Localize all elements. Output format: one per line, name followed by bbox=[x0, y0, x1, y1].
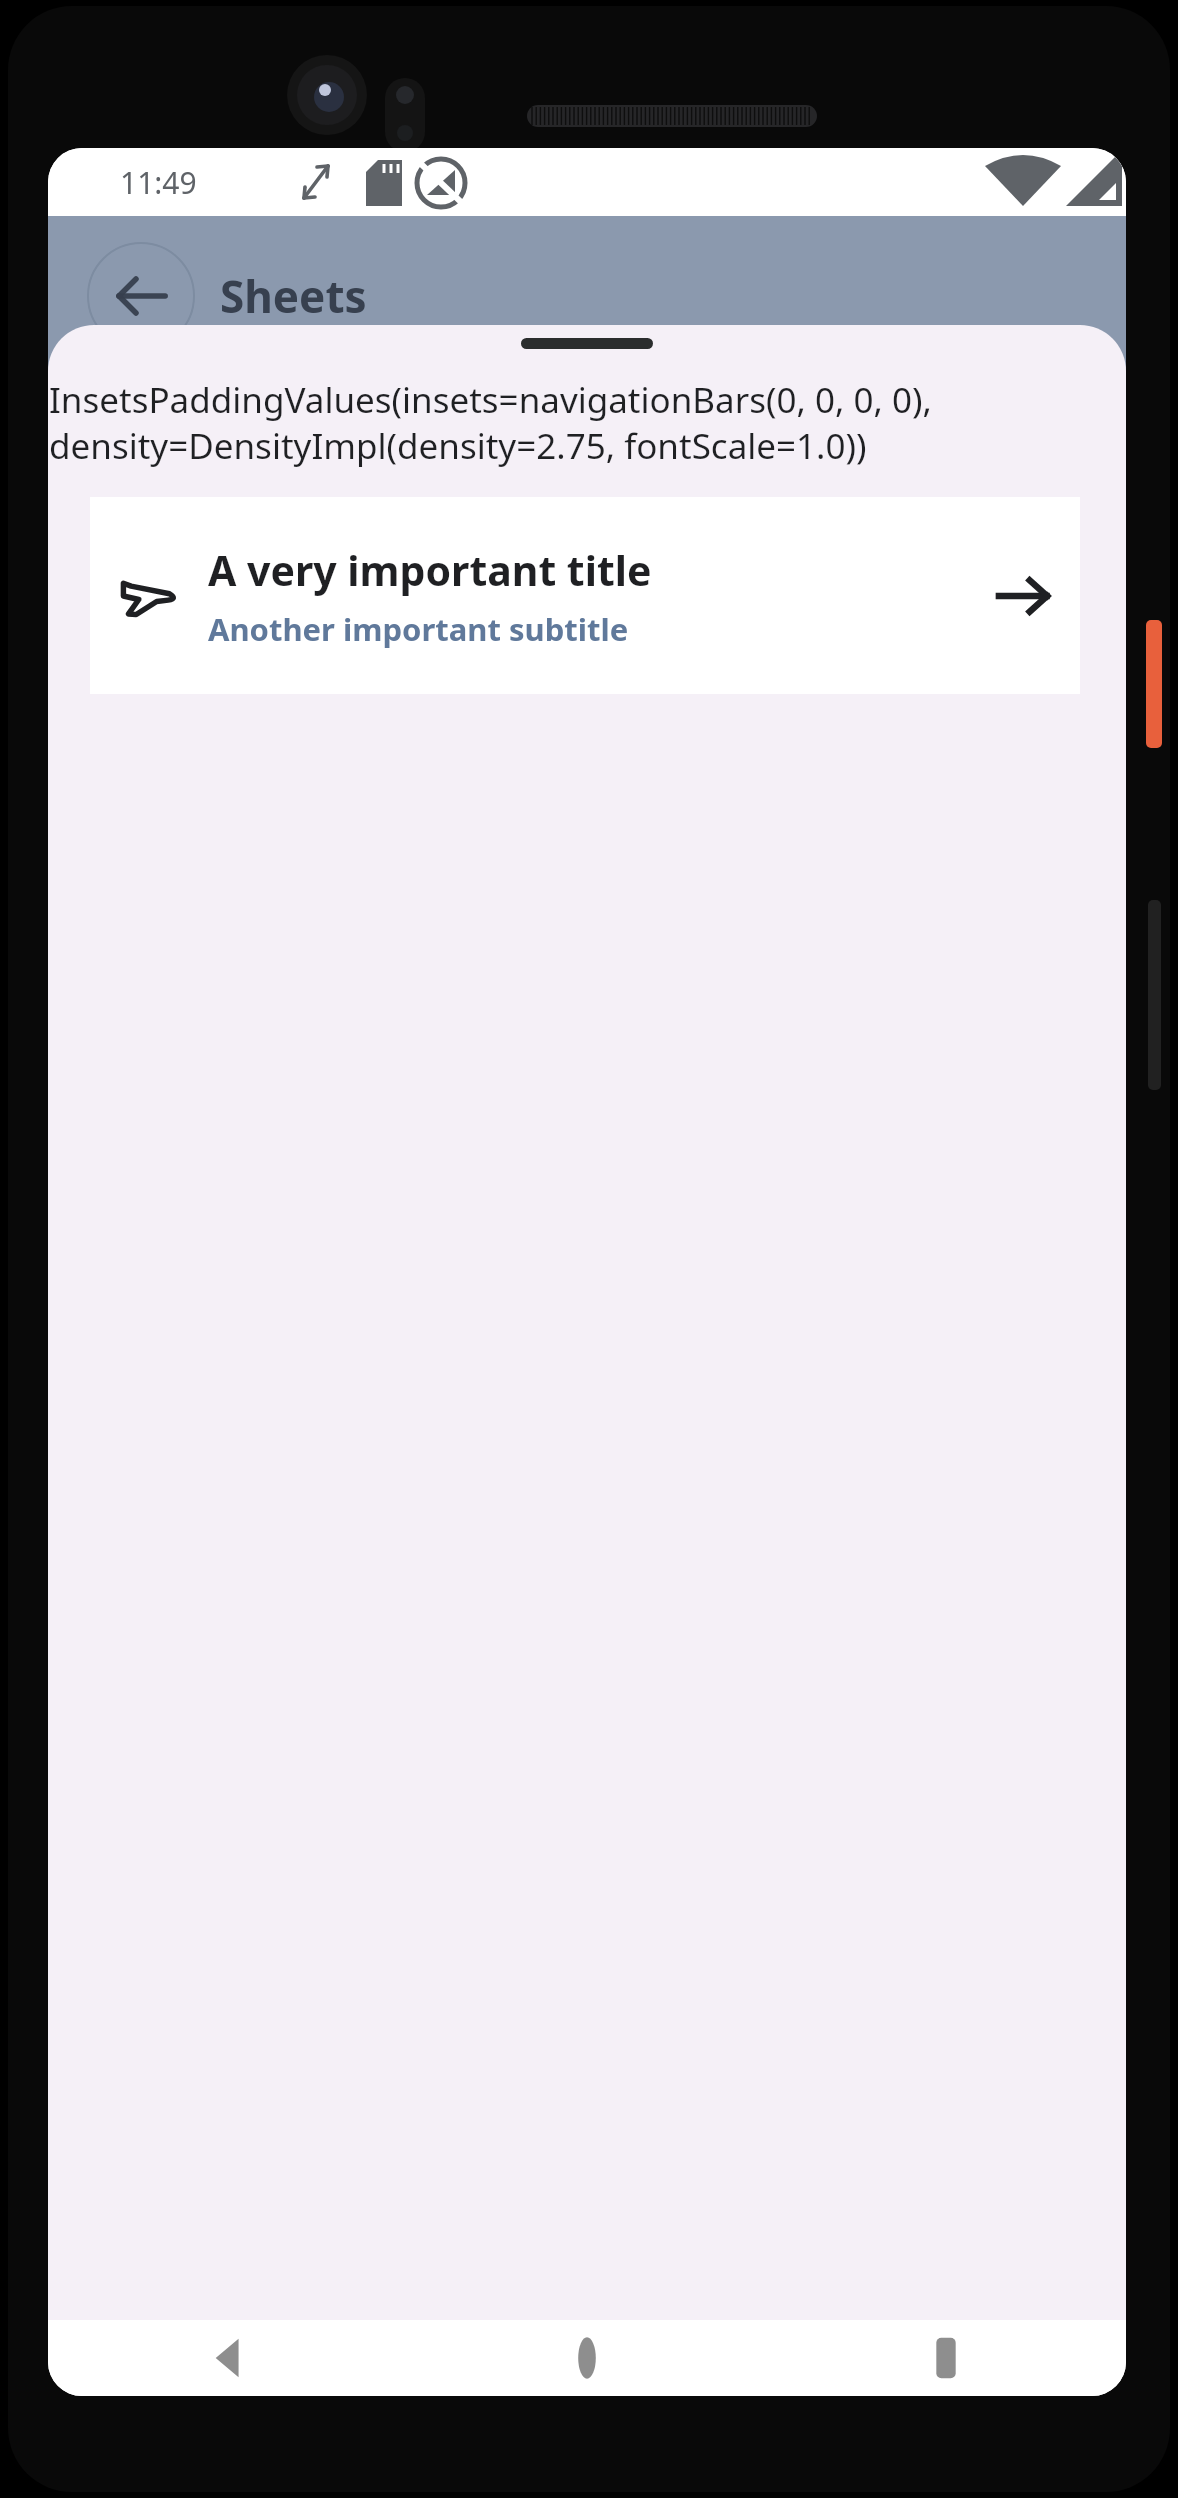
staticText: 11:49 bbox=[120, 162, 197, 203]
staticText: Another important subtitle bbox=[208, 608, 629, 650]
staticText: InsetsPaddingValues(insets=navigationBar… bbox=[49, 376, 1122, 469]
button[interactable]: Home bbox=[532, 2320, 642, 2396]
button[interactable]: Recents bbox=[891, 2320, 1001, 2396]
button[interactable]: Back bbox=[173, 2320, 283, 2396]
staticText: A very important title bbox=[208, 542, 652, 598]
button[interactable]: Back bbox=[86, 241, 196, 351]
button[interactable]: A very important title bbox=[90, 497, 1080, 694]
staticText: Sheets bbox=[220, 266, 367, 326]
other: Open bbox=[990, 563, 1056, 629]
